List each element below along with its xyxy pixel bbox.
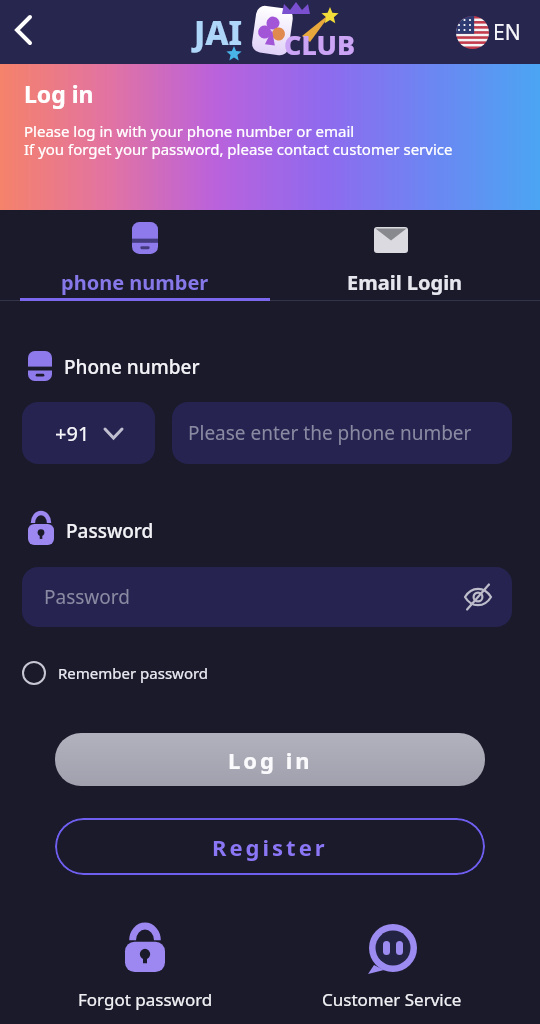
button[interactable]: Customer Service — [312, 924, 472, 1020]
button[interactable]: +91 — [22, 402, 155, 464]
staticText: Register — [212, 832, 328, 862]
staticText: Password — [66, 518, 154, 544]
button[interactable]: Email Login — [270, 212, 540, 304]
button[interactable] — [4, 10, 44, 50]
staticText: phone number — [61, 269, 209, 296]
button[interactable]: Forgot password — [65, 924, 225, 1020]
staticText: Log in — [24, 78, 94, 109]
button[interactable]: EN — [450, 8, 534, 56]
staticText: Password — [44, 584, 130, 610]
button[interactable]: phone number — [0, 212, 270, 304]
button[interactable]: Remember password — [22, 659, 252, 687]
staticText: JAI — [194, 10, 243, 55]
staticText: Please enter the phone number — [188, 420, 472, 446]
staticText: EN — [493, 18, 521, 47]
staticText: Email Login — [347, 269, 463, 296]
button[interactable]: Register — [55, 818, 485, 875]
staticText: Phone number — [64, 354, 200, 380]
staticText: +91 — [55, 420, 90, 447]
button[interactable]: Password — [22, 567, 512, 627]
staticText: Log in — [228, 745, 313, 775]
staticText: If you forget your password, please cont… — [24, 139, 453, 159]
button[interactable]: Please enter the phone number — [172, 402, 512, 464]
staticText: Please log in with your phone number or … — [24, 121, 355, 141]
staticText: Forgot password — [78, 988, 213, 1011]
button[interactable]: Log in — [55, 733, 485, 786]
staticText: Remember password — [58, 663, 209, 683]
staticText: CLUB — [284, 26, 356, 63]
staticText: Customer Service — [322, 988, 462, 1011]
